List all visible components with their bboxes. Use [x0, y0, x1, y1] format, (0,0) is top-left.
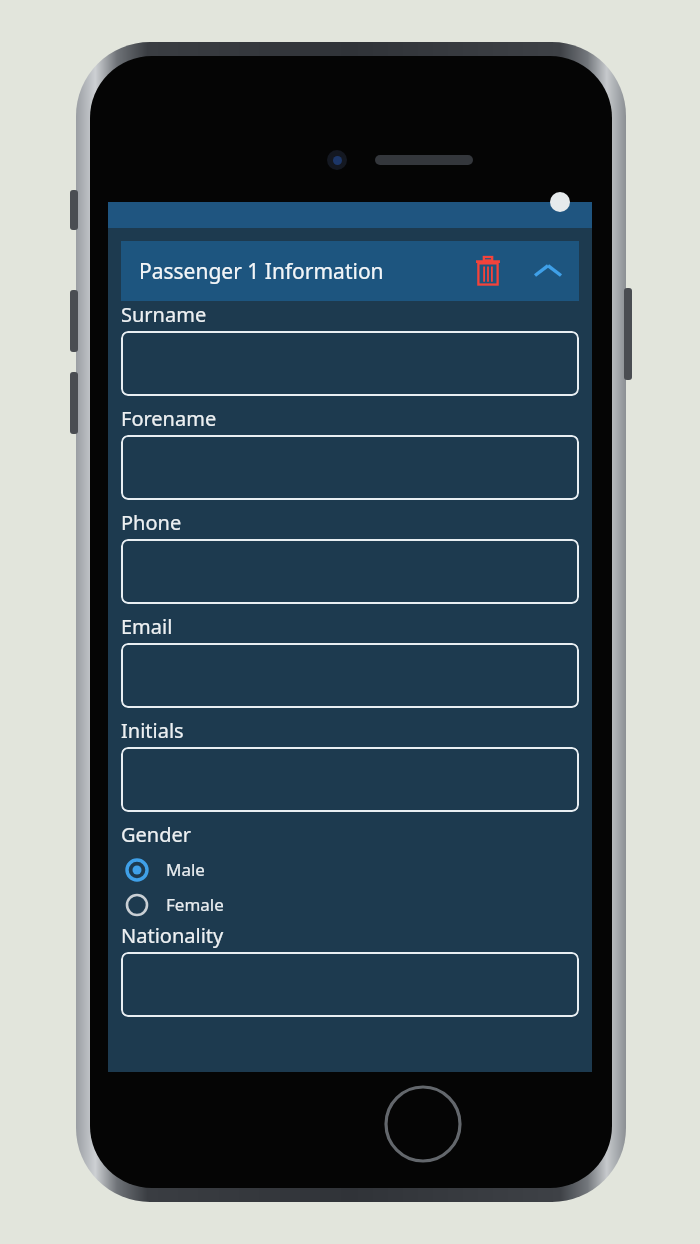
button[interactable]: Collapse section	[525, 248, 571, 294]
staticText: Female	[166, 893, 224, 916]
staticText: Gender	[121, 821, 192, 848]
button[interactable]	[121, 539, 579, 604]
staticText: Surname	[121, 301, 207, 328]
button[interactable]: Female	[121, 887, 579, 922]
button[interactable]	[121, 435, 579, 500]
staticText: Passenger 1 Information	[139, 257, 465, 286]
button[interactable]: Male	[121, 852, 579, 887]
other: Home	[384, 1085, 462, 1163]
button[interactable]: Passenger 1 Information	[121, 241, 579, 301]
button[interactable]	[121, 331, 579, 396]
button[interactable]: Delete passenger	[465, 248, 511, 294]
staticText: Phone	[121, 509, 182, 536]
button[interactable]	[121, 643, 579, 708]
staticText: Email	[121, 613, 173, 640]
button[interactable]	[121, 952, 579, 1017]
staticText: Nationality	[121, 922, 224, 949]
staticText: Male	[166, 858, 205, 881]
staticText: Forename	[121, 405, 217, 432]
staticText: Initials	[121, 717, 184, 744]
button[interactable]	[121, 747, 579, 812]
